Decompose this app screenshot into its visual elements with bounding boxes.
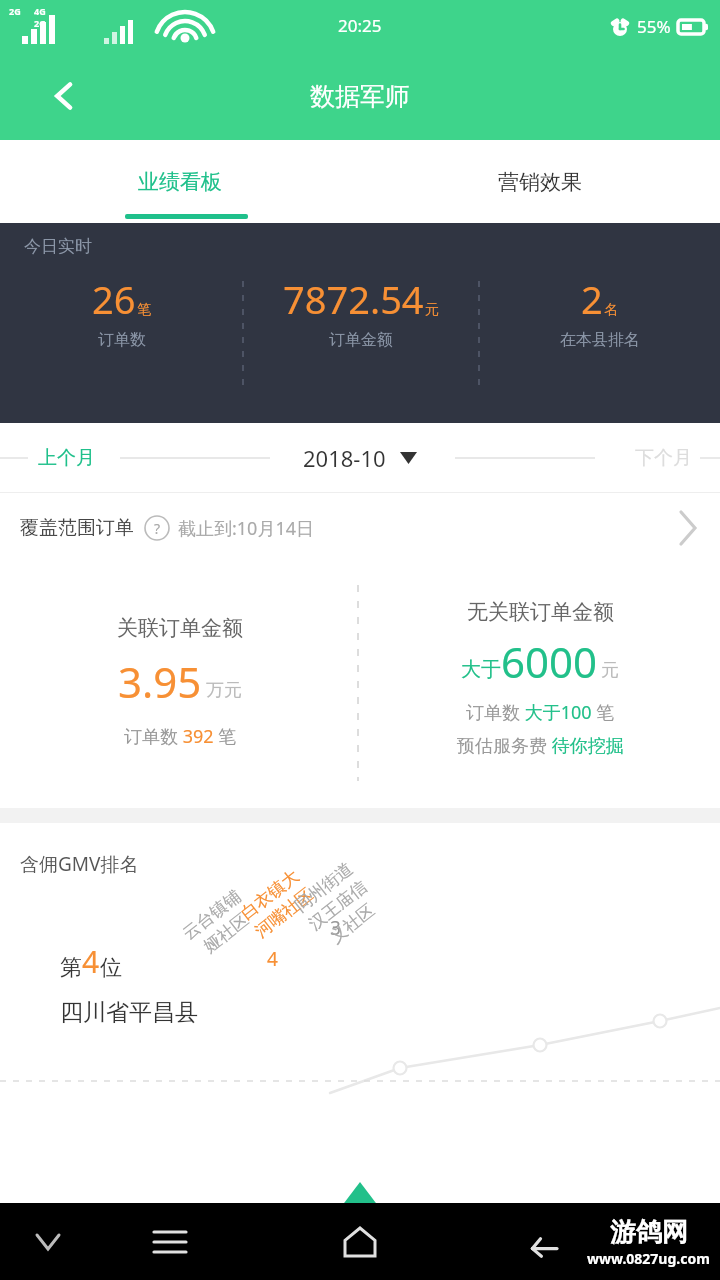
button[interactable]: Hide keyboard	[24, 1218, 72, 1266]
button[interactable]: Home	[328, 1210, 392, 1274]
staticText: 订单数 大于100 笔	[466, 700, 615, 725]
staticText: 营销效果	[498, 169, 582, 195]
staticText: 白衣镇大 河嘴社区	[237, 866, 317, 942]
staticText: 2018-10	[303, 443, 386, 473]
staticText: 笔	[137, 301, 151, 319]
staticText: 订单数 392 笔	[124, 724, 237, 749]
staticText: 订单数	[98, 330, 146, 350]
button[interactable]: 营销效果	[360, 140, 720, 223]
staticText: 3.95	[118, 653, 202, 710]
button[interactable]: 下个月	[635, 446, 692, 470]
staticText: 游鸽网	[610, 1216, 688, 1249]
staticText: 业绩看板	[138, 169, 222, 195]
button[interactable]: 关联订单金额	[0, 563, 360, 808]
button[interactable]: Back	[514, 1214, 570, 1270]
button[interactable]: 上个月	[38, 446, 95, 470]
staticText: 7872.54	[283, 273, 424, 325]
button[interactable]: 业绩看板	[0, 140, 360, 223]
staticText: 数据军师	[310, 81, 410, 112]
staticText: 关联订单金额	[117, 615, 243, 641]
staticText: 元	[601, 659, 619, 682]
staticText: 20:25	[338, 14, 382, 37]
staticText: 含佣GMV排名	[20, 851, 139, 877]
staticText: 6000	[501, 633, 598, 690]
staticText: 同州街道 汉王庙信 义社区	[291, 858, 385, 953]
button[interactable]: 覆盖范围订单	[0, 493, 720, 563]
staticText: 预估服务费 待你挖掘	[457, 733, 624, 758]
button[interactable]: 无关联订单金额	[360, 563, 720, 808]
staticText: 第	[60, 954, 82, 982]
button[interactable]: Menu	[140, 1212, 200, 1272]
button[interactable]: Back	[40, 72, 88, 120]
staticText: 无关联订单金额	[467, 599, 614, 625]
staticText: 元	[425, 301, 439, 319]
staticText: 位	[100, 954, 122, 982]
staticText: www.0827ug.com	[587, 1249, 710, 1268]
staticText: 4	[267, 946, 278, 972]
staticText: 今日实时	[24, 236, 92, 257]
staticText: 名	[604, 301, 618, 319]
staticText: 订单金额	[329, 330, 393, 350]
staticText: ?	[154, 519, 161, 538]
staticText: 云台镇铺 娅社区	[179, 886, 259, 962]
staticText: 截止到:10月14日	[178, 516, 315, 541]
staticText: 在本县排名	[560, 330, 640, 350]
staticText: 55%	[637, 15, 671, 38]
staticText: 4	[82, 941, 100, 982]
staticText: 覆盖范围订单	[20, 516, 134, 540]
staticText: 4G	[34, 5, 46, 17]
staticText: 2	[581, 273, 603, 325]
staticText: 2G	[9, 5, 21, 17]
staticText: 3	[330, 915, 341, 941]
button[interactable]: 2018-10	[303, 443, 417, 473]
staticText: 四川省平昌县	[60, 998, 198, 1027]
staticText: 2G	[34, 17, 46, 29]
staticText: 26	[92, 273, 136, 325]
staticText: 大于	[461, 657, 501, 682]
staticText: 万元	[206, 679, 242, 702]
